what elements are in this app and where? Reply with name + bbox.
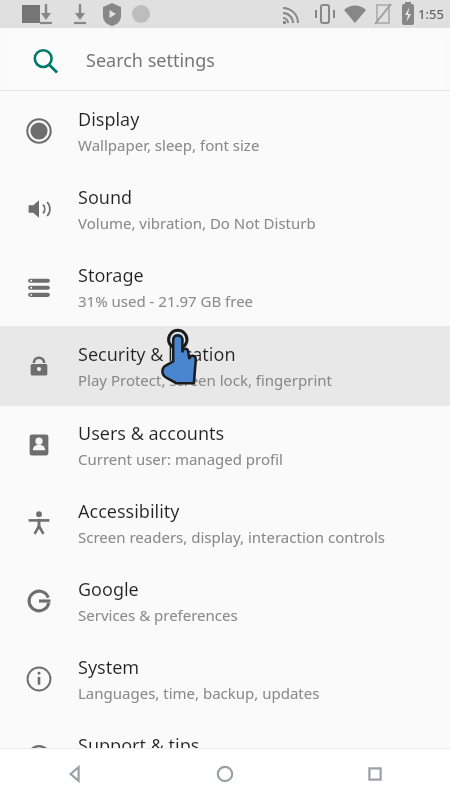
staticText: Accessibility	[78, 499, 180, 524]
button[interactable]: Sound	[0, 170, 450, 248]
staticText: Screen readers, display, interaction con…	[78, 527, 385, 547]
staticText: Storage	[78, 263, 144, 288]
staticText: 31% used - 21.97 GB free	[78, 291, 254, 311]
staticText: Search settings	[86, 48, 215, 73]
button[interactable]: System	[0, 640, 450, 718]
button[interactable]: Users & accounts	[0, 406, 450, 484]
staticText: Users & accounts	[78, 421, 225, 446]
staticText: Google	[78, 577, 139, 602]
staticText: Volume, vibration, Do Not Disturb	[78, 213, 316, 233]
staticText: Sound	[78, 185, 133, 210]
staticText: 1:55	[418, 5, 444, 23]
staticText: Play Protect, screen lock, fingerprint	[78, 370, 332, 390]
button[interactable]: Accessibility	[0, 484, 450, 562]
button[interactable]: Support & tips	[0, 718, 450, 796]
button[interactable]: Back	[0, 748, 150, 800]
button[interactable]: Security & location	[0, 326, 450, 406]
button[interactable]: Recent apps	[300, 748, 450, 800]
button[interactable]: Home	[150, 748, 300, 800]
button[interactable]: Storage	[0, 248, 450, 326]
staticText: Wallpaper, sleep, font size	[78, 135, 260, 155]
staticText: Help articles, phone & chat, getting sta…	[78, 761, 381, 781]
staticText: Support & tips	[78, 733, 200, 758]
staticText: Languages, time, backup, updates	[78, 683, 320, 703]
staticText: System	[78, 655, 140, 680]
button[interactable]: Google	[0, 562, 450, 640]
staticText: Services & preferences	[78, 605, 238, 625]
button[interactable]: Search settings	[8, 33, 442, 88]
staticText: Current user: managed profil	[78, 449, 283, 469]
staticText: Security & location	[78, 342, 236, 367]
staticText: Display	[78, 107, 140, 132]
button[interactable]: Display	[0, 92, 450, 170]
